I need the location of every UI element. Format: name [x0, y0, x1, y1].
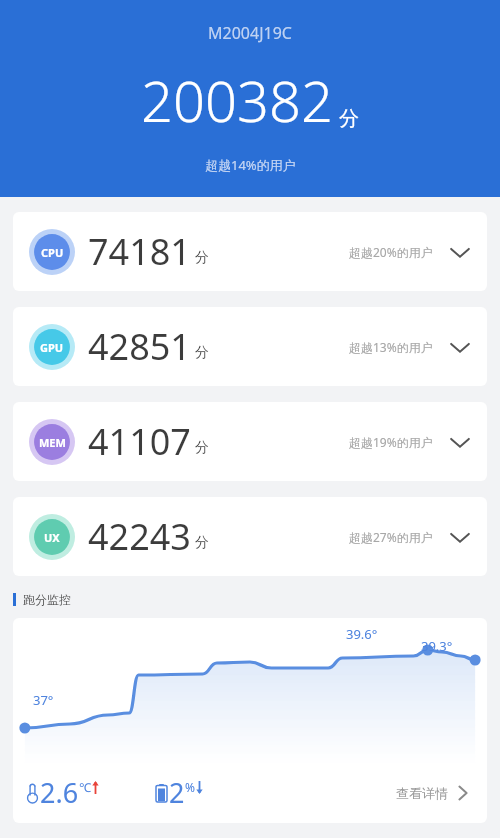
- button[interactable]: UX: [13, 497, 487, 576]
- staticText: 2.6: [40, 774, 79, 811]
- staticText: 39.3°: [421, 637, 453, 655]
- staticText: 分: [339, 106, 359, 131]
- button[interactable]: GPU: [13, 307, 487, 386]
- button[interactable]: 查看详情: [396, 783, 473, 803]
- staticText: 2: [169, 774, 185, 811]
- staticText: 分: [195, 344, 209, 362]
- staticText: 超越14%的用户: [205, 156, 296, 174]
- staticText: 超越19%的用户: [349, 434, 433, 450]
- staticText: 查看详情: [396, 785, 448, 801]
- staticText: UX: [44, 530, 60, 545]
- staticText: M2004J19C: [208, 22, 292, 44]
- staticText: 74181: [88, 227, 191, 276]
- staticText: ℃: [79, 779, 91, 795]
- button[interactable]: CPU: [13, 212, 487, 291]
- staticText: 超越27%的用户: [349, 529, 433, 545]
- staticText: 超越13%的用户: [349, 339, 433, 355]
- staticText: MEM: [39, 435, 66, 450]
- staticText: 37°: [33, 691, 54, 709]
- staticText: 200382: [141, 62, 333, 138]
- staticText: 分: [195, 249, 209, 267]
- staticText: 39.6°: [346, 625, 378, 643]
- staticText: 41107: [88, 417, 191, 466]
- staticText: 42851: [88, 322, 191, 371]
- staticText: %: [185, 779, 195, 795]
- button[interactable]: MEM: [13, 402, 487, 481]
- staticText: GPU: [40, 340, 64, 355]
- staticText: CPU: [41, 245, 64, 260]
- staticText: 分: [195, 534, 209, 552]
- staticText: 分: [195, 439, 209, 457]
- staticText: 跑分监控: [23, 592, 71, 607]
- staticText: 42243: [88, 512, 191, 561]
- staticText: 超越20%的用户: [349, 244, 433, 260]
